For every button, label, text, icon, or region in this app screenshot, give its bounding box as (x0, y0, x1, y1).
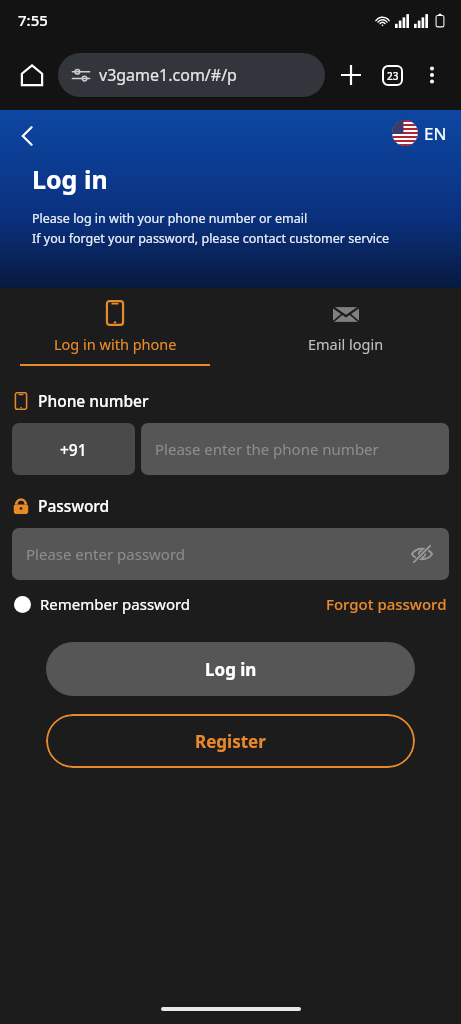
button[interactable]: v3game1.com/#/p (58, 53, 325, 97)
staticText: Please enter the phone number (155, 439, 379, 459)
staticText: Forgot password (326, 594, 447, 614)
staticText: Log in (205, 658, 257, 681)
staticText: Email login (308, 334, 384, 354)
button[interactable]: New tab (331, 55, 371, 95)
staticText: v3game1.com/#/p (99, 64, 237, 86)
button[interactable]: Email login (288, 300, 404, 354)
button[interactable]: More options (413, 56, 451, 94)
button[interactable]: Show password (407, 539, 437, 569)
staticText: +91 (60, 439, 87, 460)
staticText: 7:55 (18, 10, 48, 30)
staticText: Please log in with your phone number or … (32, 210, 308, 227)
button[interactable]: Log in (46, 642, 415, 696)
staticText: Password (38, 495, 110, 516)
button[interactable]: Please enter password (12, 528, 449, 580)
button[interactable]: Home (10, 53, 54, 97)
button[interactable]: Log in with phone (0, 300, 230, 366)
button[interactable]: +91 (12, 423, 135, 475)
staticText: Please enter password (26, 544, 407, 564)
staticText: Log in (32, 162, 108, 196)
button[interactable]: Remember password (14, 594, 191, 614)
button[interactable]: EN (388, 116, 451, 150)
button[interactable]: Tabs: 23 (371, 54, 413, 96)
staticText: Remember password (40, 594, 191, 614)
button[interactable]: Please enter the phone number (141, 423, 449, 475)
staticText: Log in with phone (54, 334, 177, 354)
staticText: Phone number (38, 390, 149, 411)
button[interactable]: Back (6, 114, 50, 158)
staticText: Register (195, 730, 266, 753)
button[interactable]: Forgot password (326, 594, 447, 614)
button[interactable]: Register (46, 714, 415, 768)
staticText: EN (424, 122, 447, 145)
staticText: If you forget your password, please cont… (32, 230, 390, 247)
staticText: 23 (387, 69, 399, 83)
